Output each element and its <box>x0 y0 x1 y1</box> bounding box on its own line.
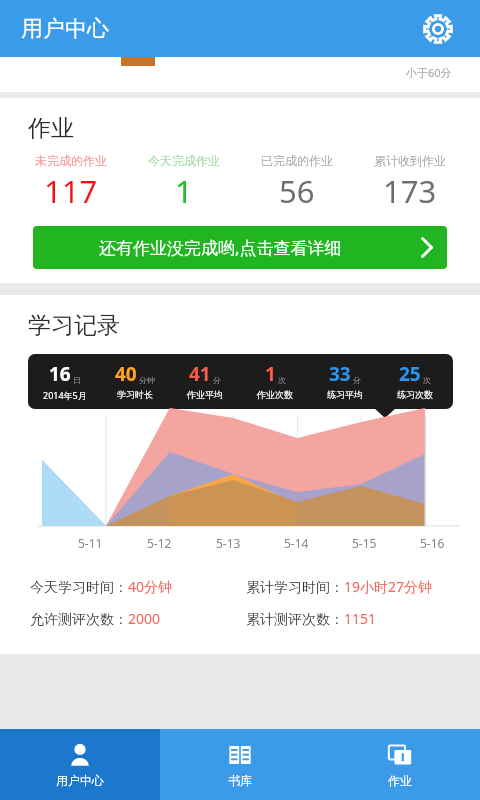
staticText: 41 <box>189 361 211 387</box>
staticText: 分钟 <box>139 375 155 385</box>
staticText: 日 <box>73 375 81 385</box>
staticText: 5-11 <box>78 535 103 551</box>
staticText: 作业 <box>388 773 412 788</box>
staticText: 还有作业没完成哟,点击查看详细 <box>99 236 342 259</box>
staticText: 173 <box>383 170 437 212</box>
staticText: 次 <box>423 375 431 385</box>
staticText: 已完成的作业 <box>261 153 333 168</box>
button[interactable]: 书库 <box>160 729 320 800</box>
staticText: 33 <box>329 361 351 387</box>
staticText: 40 <box>115 361 137 387</box>
staticText: 16 <box>49 361 71 387</box>
button[interactable]: 用户中心 <box>0 729 160 800</box>
staticText: 用户中心 <box>21 15 109 43</box>
staticText: 5-14 <box>284 535 309 551</box>
staticText: 累计收到作业 <box>374 153 446 168</box>
staticText: 学习时长 <box>117 389 153 400</box>
staticText: 作业平均 <box>187 389 223 400</box>
staticText: 分 <box>213 375 221 385</box>
staticText: 5-12 <box>147 535 172 551</box>
staticText: 1 <box>265 361 276 387</box>
staticText: 未完成的作业 <box>35 153 107 168</box>
staticText: 56 <box>279 170 315 212</box>
button[interactable]: 作业 <box>320 729 480 800</box>
staticText: 累计测评次数：1151 <box>246 609 377 628</box>
staticText: 117 <box>44 170 98 212</box>
staticText: 5-16 <box>420 535 445 551</box>
staticText: 小于60分 <box>406 65 452 80</box>
staticText: 次 <box>278 375 286 385</box>
staticText: 5-15 <box>352 535 377 551</box>
staticText: 作业次数 <box>257 389 293 400</box>
button[interactable]: 还有作业没完成哟,点击查看详细 <box>33 226 447 269</box>
staticText: 今天完成作业 <box>148 153 220 168</box>
staticText: 作业 <box>28 114 74 143</box>
staticText: 累计学习时间：19小时27分钟 <box>246 577 433 596</box>
staticText: 25 <box>399 361 421 387</box>
staticText: 分 <box>353 375 361 385</box>
staticText: 练习次数 <box>397 389 433 400</box>
staticText: 今天学习时间：40分钟 <box>30 577 173 596</box>
staticText: 允许测评次数：2000 <box>30 609 161 628</box>
staticText: 用户中心 <box>56 773 104 788</box>
staticText: 书库 <box>228 773 252 788</box>
staticText: 学习记录 <box>28 311 120 340</box>
staticText: 1 <box>175 170 193 212</box>
staticText: 练习平均 <box>327 389 363 400</box>
staticText: 2014年5月 <box>43 389 87 401</box>
button[interactable]: Settings <box>418 9 458 49</box>
staticText: 5-13 <box>216 535 241 551</box>
